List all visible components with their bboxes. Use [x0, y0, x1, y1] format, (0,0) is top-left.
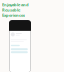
staticText: Enjoyable and: [2, 2, 29, 7]
staticText: Reusable: [2, 7, 20, 13]
staticText: Experiences: [2, 13, 25, 18]
